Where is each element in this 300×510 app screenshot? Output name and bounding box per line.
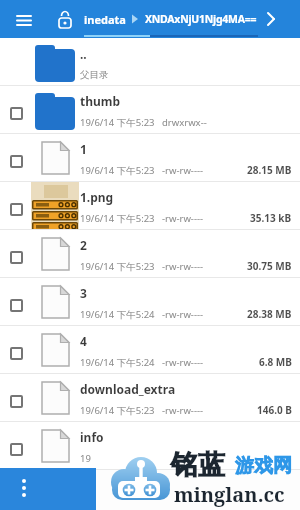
- staticText: ..: [80, 46, 87, 62]
- staticText: 3: [80, 285, 87, 301]
- staticText: 19/6/14 下午5:24 -rw-rw----: [80, 308, 204, 321]
- staticText: inedata: [84, 12, 126, 27]
- button[interactable]: [13, 10, 35, 30]
- button[interactable]: 1.png: [0, 182, 300, 230]
- staticText: 19/6/14 下午5:23 -rw-rw----: [80, 404, 204, 417]
- button[interactable]: thumb: [0, 86, 300, 134]
- button[interactable]: [56, 9, 76, 31]
- staticText: download_extra: [80, 381, 176, 397]
- staticText: 6.8 MB: [259, 355, 292, 369]
- staticText: 父目录: [80, 69, 109, 81]
- button[interactable]: [10, 251, 23, 264]
- button[interactable]: [10, 107, 23, 120]
- staticText: minglan.cc: [174, 481, 285, 508]
- staticText: 19/6/14 下午5:23 drwxrwx--: [80, 116, 207, 129]
- button[interactable]: [10, 395, 23, 408]
- staticText: 19/6/14 下午5:23 -rw-rw----: [80, 164, 204, 177]
- button[interactable]: [10, 443, 23, 456]
- button[interactable]: 1: [0, 134, 300, 182]
- button[interactable]: [10, 203, 23, 216]
- staticText: info: [80, 429, 104, 445]
- staticText: 19/6/14 下午5:23 -rw-rw----: [80, 260, 204, 273]
- staticText: 1.png: [80, 189, 114, 205]
- staticText: 1: [80, 141, 87, 157]
- button[interactable]: [10, 347, 23, 360]
- staticText: 游戏网: [235, 454, 292, 478]
- staticText: 28.15 MB: [247, 163, 292, 177]
- button[interactable]: 4: [0, 326, 300, 374]
- staticText: 19/6/14 下午5:23 -rw-rw----: [80, 212, 204, 225]
- button[interactable]: [258, 6, 286, 32]
- staticText: 146.0 B: [257, 403, 292, 417]
- button[interactable]: download_extra: [0, 374, 300, 422]
- button[interactable]: info: [0, 422, 300, 470]
- button[interactable]: 2: [0, 230, 300, 278]
- staticText: 4: [80, 333, 87, 349]
- staticText: 35.13 kB: [250, 211, 292, 225]
- button[interactable]: 3: [0, 278, 300, 326]
- button[interactable]: ..: [0, 38, 300, 86]
- button[interactable]: [10, 299, 23, 312]
- button[interactable]: [10, 155, 23, 168]
- staticText: 19: [80, 452, 91, 465]
- staticText: 2: [80, 237, 87, 253]
- button[interactable]: [0, 468, 96, 510]
- staticText: thumb: [80, 93, 121, 109]
- staticText: 铭蓝: [171, 448, 225, 482]
- staticText: 19/6/14 下午5:24 -rw-rw----: [80, 356, 204, 369]
- staticText: 30.75 MB: [247, 259, 292, 273]
- staticText: XNDAxNjU1Njg4MA==: [145, 12, 257, 26]
- staticText: 28.38 MB: [247, 307, 292, 321]
